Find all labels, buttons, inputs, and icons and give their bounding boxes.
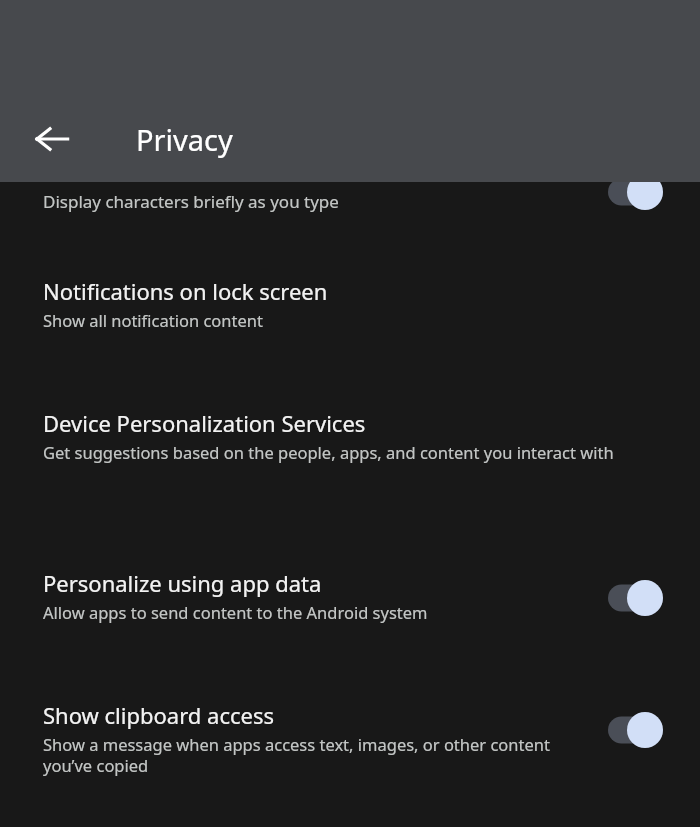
button[interactable]: Show clipboard access <box>0 700 700 777</box>
button[interactable]: Toggle setting <box>608 578 670 618</box>
staticText: Personalize using app data <box>43 568 322 598</box>
button[interactable]: Back <box>22 109 82 169</box>
button[interactable]: Personalize using app data <box>0 568 700 623</box>
staticText: Device Personalization Services <box>43 408 366 438</box>
button[interactable]: Display characters briefly as you type <box>0 172 700 232</box>
staticText: Show all notification content <box>43 309 563 331</box>
staticText: Get suggestions based on the people, app… <box>43 441 643 463</box>
staticText: Allow apps to send content to the Androi… <box>43 601 603 623</box>
button[interactable]: Toggle setting <box>608 710 670 750</box>
staticText: Display characters briefly as you type <box>43 190 339 213</box>
button[interactable]: Notifications on lock screen <box>0 276 700 331</box>
staticText: Show a message when apps access text, im… <box>43 733 583 777</box>
staticText: Show clipboard access <box>43 700 275 730</box>
button[interactable]: Toggle setting <box>608 172 670 212</box>
button[interactable]: Device Personalization Services <box>0 408 700 463</box>
staticText: Notifications on lock screen <box>43 276 328 306</box>
staticText: Privacy <box>136 120 233 159</box>
